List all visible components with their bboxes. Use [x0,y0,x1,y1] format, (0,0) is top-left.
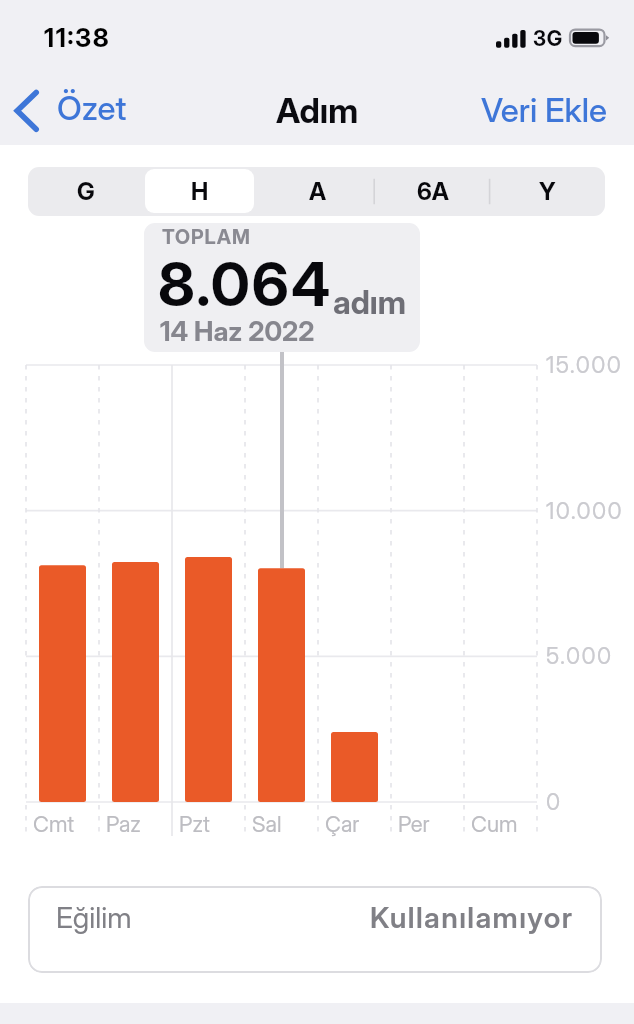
staticText: Veri Ekle [481,90,607,130]
button[interactable]: Y [490,167,605,216]
button[interactable]: Back to Özet [8,84,133,132]
staticText: TOPLAM [162,225,251,249]
staticText: Paz [106,811,141,838]
button[interactable]: 6A [375,167,490,216]
staticText: 6A [417,177,449,206]
staticText: 11:38 [44,22,111,53]
staticText: H [193,177,211,206]
button[interactable]: H [144,167,260,216]
staticText: Eğilim [56,900,132,935]
staticText: Cum [471,811,518,838]
staticText: 5.000 [546,642,613,670]
staticText: G [77,177,95,206]
staticText: Kullanılamıyor [370,900,574,935]
button[interactable]: Veri Ekle [475,85,613,135]
staticText: 15.000 [546,351,623,379]
staticText: Çar [325,811,360,838]
staticText: A [309,177,327,206]
staticText: Y [539,177,556,206]
button[interactable]: A [260,167,375,216]
staticText: 3G [533,26,564,51]
staticText: 8.064 [158,248,333,321]
staticText: Cmt [33,811,75,838]
staticText: Adım [276,90,359,131]
staticText: adım [333,283,406,322]
staticText: H [191,177,209,206]
button[interactable]: G [28,167,144,216]
button[interactable]: H [145,169,254,213]
staticText: Sal [252,811,282,838]
staticText: Özet [57,88,127,128]
staticText: Pzt [179,811,210,838]
staticText: Per [398,811,430,838]
staticText: 0 [546,788,562,816]
button[interactable]: Eğilim [28,886,602,973]
staticText: 14 Haz 2022 [160,315,315,348]
staticText: 10.000 [546,497,624,525]
